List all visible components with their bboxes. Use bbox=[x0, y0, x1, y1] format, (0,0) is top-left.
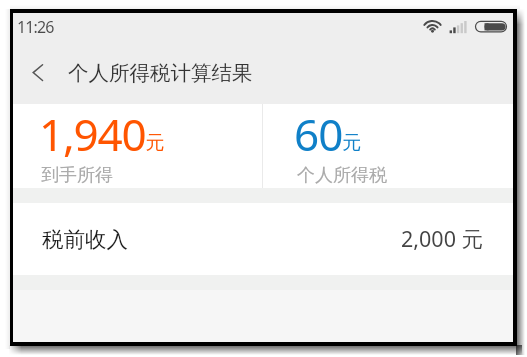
staticText: 到手所得 bbox=[41, 164, 113, 187]
staticText: 1,940元 bbox=[39, 104, 165, 164]
staticText: 60元 bbox=[294, 104, 362, 164]
button[interactable]: Back bbox=[13, 41, 61, 104]
staticText: 个人所得税 bbox=[297, 164, 387, 187]
staticText: 2,000 元 bbox=[401, 224, 484, 253]
staticText: 个人所得税计算结果 bbox=[68, 60, 253, 86]
button[interactable]: 税前收入 bbox=[13, 203, 513, 275]
staticText: 11:26 bbox=[17, 16, 54, 38]
staticText: 税前收入 bbox=[42, 226, 128, 253]
